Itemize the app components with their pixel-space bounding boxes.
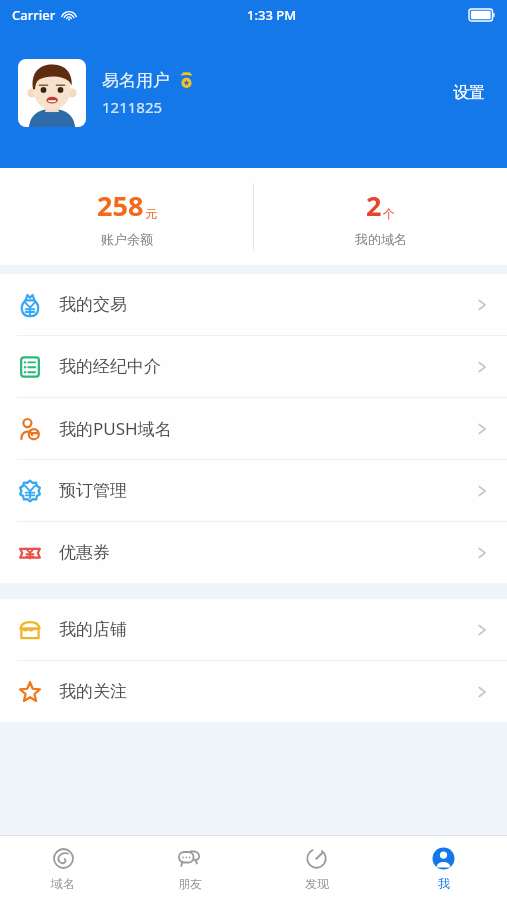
staticText: 我的店铺 <box>59 619 127 640</box>
button[interactable]: 设置 <box>447 75 491 111</box>
staticText: 发现 <box>305 876 329 891</box>
button[interactable]: 朋友 <box>126 836 253 900</box>
staticText: 我的经纪中介 <box>59 356 161 377</box>
staticText: 域名 <box>51 876 75 891</box>
staticText: 个 <box>383 206 395 221</box>
button[interactable]: 我的店铺 <box>0 599 507 660</box>
button[interactable]: 优惠券 <box>0 522 507 583</box>
staticText: 我 <box>438 876 450 891</box>
staticText: 易名用户 <box>102 70 170 91</box>
staticText: 账户余额 <box>101 231 153 247</box>
staticText: 1:33 PM <box>247 6 297 24</box>
staticText: 设置 <box>453 83 485 103</box>
staticText: 258 <box>97 187 144 224</box>
button[interactable]: 我 <box>380 836 507 900</box>
staticText: 预订管理 <box>59 480 127 501</box>
button[interactable]: 我的交易 <box>0 274 507 335</box>
staticText: 1211825 <box>102 97 163 117</box>
button[interactable]: Avatar <box>18 59 86 127</box>
button[interactable]: 发现 <box>253 836 380 900</box>
button[interactable]: 域名 <box>0 836 126 900</box>
staticText: 朋友 <box>178 876 202 891</box>
staticText: 优惠券 <box>59 542 110 563</box>
staticText: 我的关注 <box>59 681 127 702</box>
button[interactable]: 我的经纪中介 <box>0 336 507 397</box>
staticText: 我的交易 <box>59 294 127 315</box>
button[interactable]: 2 <box>254 168 507 265</box>
staticText: 元 <box>145 206 157 221</box>
button[interactable]: 我的关注 <box>0 661 507 722</box>
staticText: 我的PUSH域名 <box>59 417 172 440</box>
button[interactable]: 预订管理 <box>0 460 507 521</box>
staticText: 2 <box>366 187 382 224</box>
button[interactable]: 我的PUSH域名 <box>0 398 507 459</box>
staticText: Carrier <box>12 6 56 24</box>
button[interactable]: 258 <box>0 168 253 265</box>
staticText: 我的域名 <box>355 231 407 247</box>
